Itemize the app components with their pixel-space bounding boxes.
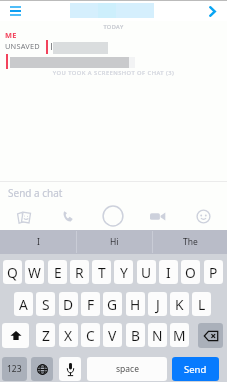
button[interactable]: Call — [54, 205, 82, 227]
staticText: B — [131, 326, 140, 345]
staticText: O — [185, 263, 196, 282]
staticText: The — [183, 236, 198, 248]
button[interactable]: W — [25, 260, 44, 284]
button[interactable]: E — [48, 260, 67, 284]
button[interactable]: H — [126, 292, 145, 316]
staticText: E — [54, 263, 62, 282]
staticText: J — [156, 295, 160, 314]
button[interactable]: J — [148, 292, 167, 316]
button[interactable]: Change keyboard — [31, 357, 53, 381]
button[interactable]: P — [204, 260, 223, 284]
button[interactable]: 123 — [2, 357, 27, 381]
staticText: L — [198, 295, 206, 314]
staticText: space — [116, 363, 139, 375]
button[interactable]: M — [170, 323, 189, 347]
staticText: P — [209, 263, 218, 282]
staticText: TODAY — [0, 23, 227, 31]
button[interactable]: Stickers — [10, 205, 38, 227]
button[interactable]: D — [59, 292, 78, 316]
staticText: N — [152, 326, 163, 345]
button[interactable]: Forward — [202, 1, 222, 21]
button[interactable]: Q — [3, 260, 22, 284]
staticText: Send — [184, 363, 207, 376]
button[interactable]: L — [192, 292, 211, 316]
button[interactable]: G — [103, 292, 122, 316]
staticText: Send a chat — [8, 186, 63, 200]
staticText: S — [42, 295, 50, 314]
button[interactable]: Hi — [76, 230, 152, 254]
button[interactable]: Camera — [99, 205, 127, 227]
staticText: A — [19, 295, 28, 314]
button[interactable]: B — [126, 323, 145, 347]
button[interactable]: Menu — [3, 1, 27, 21]
button[interactable]: space — [87, 357, 167, 381]
button[interactable]: U — [137, 260, 156, 284]
staticText: Hi — [110, 236, 119, 248]
staticText: I — [37, 236, 40, 248]
staticText: Q — [7, 263, 18, 282]
staticText: 123 — [7, 363, 22, 375]
button[interactable]: I — [159, 260, 178, 284]
button[interactable]: O — [181, 260, 200, 284]
button[interactable]: I — [0, 230, 76, 254]
button[interactable]: Dictate — [59, 357, 81, 381]
staticText: H — [130, 295, 141, 314]
staticText: V — [108, 326, 117, 345]
button[interactable]: Z — [36, 323, 55, 347]
staticText: F — [87, 295, 95, 314]
button[interactable]: Backspace — [198, 323, 223, 348]
staticText: D — [63, 295, 74, 314]
staticText: X — [64, 326, 73, 345]
staticText: W — [28, 263, 41, 282]
button[interactable]: Emoji — [189, 205, 217, 227]
button[interactable]: X — [59, 323, 78, 347]
staticText: Z — [42, 326, 50, 345]
staticText: YOU TOOK A SCREENSHOT OF CHAT (3) — [0, 69, 227, 77]
staticText: UNSAVED — [5, 41, 40, 51]
button[interactable]: S — [36, 292, 55, 316]
button[interactable]: A — [14, 292, 33, 316]
button[interactable]: C — [81, 323, 100, 347]
button[interactable]: Send — [172, 357, 219, 381]
staticText: C — [86, 326, 95, 345]
staticText: ME — [5, 30, 17, 40]
button[interactable]: V — [103, 323, 122, 347]
staticText: K — [175, 295, 184, 314]
staticText: Y — [120, 263, 128, 282]
staticText: T — [98, 263, 106, 282]
staticText: G — [107, 295, 118, 314]
button[interactable]: T — [92, 260, 111, 284]
button[interactable]: The — [153, 230, 227, 254]
button[interactable]: F — [81, 292, 100, 316]
button[interactable]: Video call — [143, 205, 171, 227]
button[interactable]: K — [170, 292, 189, 316]
button[interactable]: Y — [114, 260, 133, 284]
button[interactable]: Shift — [2, 323, 29, 348]
staticText: R — [75, 263, 84, 282]
staticText: I — [166, 263, 171, 282]
button[interactable]: N — [148, 323, 167, 347]
button[interactable]: R — [70, 260, 89, 284]
staticText: U — [141, 263, 152, 282]
staticText: M — [173, 326, 186, 345]
